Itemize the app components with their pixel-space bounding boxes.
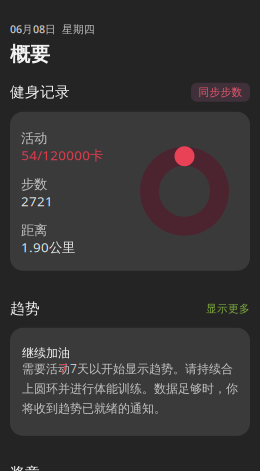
staticText: 同步步数	[198, 86, 242, 99]
staticText: 步数	[21, 176, 47, 193]
staticText: 06月08日 星期四	[10, 22, 95, 36]
staticText: 概要	[10, 42, 50, 67]
staticText: 健身记录	[10, 83, 70, 101]
staticText: 1.90公里	[21, 238, 75, 256]
button[interactable]: 同步步数	[191, 83, 250, 102]
staticText: 继续加油	[22, 346, 70, 360]
staticText: 显示更多	[206, 302, 250, 315]
button[interactable]: 显示更多	[206, 302, 250, 315]
staticText: 距离	[21, 222, 47, 239]
staticText: 54/120000卡	[21, 146, 103, 164]
staticText: 活动	[21, 130, 47, 147]
staticText: 2721	[21, 192, 53, 210]
staticText: 7	[60, 360, 67, 376]
staticText: 趋势	[10, 300, 40, 318]
staticText: 需要活动7天以开始显示趋势。请持续合上圆环并进行体能训练。数据足够时，你将收到趋…	[22, 360, 238, 416]
staticText: 奖章	[10, 464, 40, 471]
